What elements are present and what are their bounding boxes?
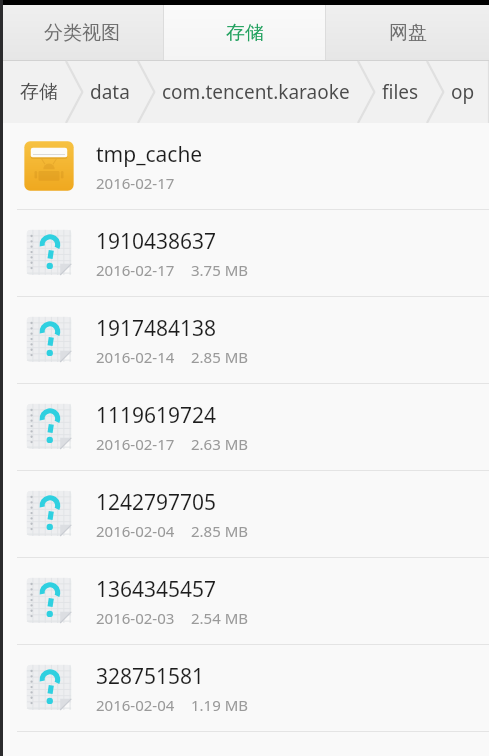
staticText: 网盘: [389, 21, 427, 45]
staticText: 1910438637: [96, 227, 217, 256]
button[interactable]: 1910438637: [0, 210, 489, 296]
staticText: 1.19 MB: [191, 695, 249, 715]
button[interactable]: 存储: [14, 61, 64, 123]
button[interactable]: opus: [445, 61, 489, 123]
staticText: 2016-02-04: [96, 695, 175, 715]
button[interactable]: tmp_cache: [0, 123, 489, 209]
button[interactable]: 1917484138: [0, 297, 489, 383]
button[interactable]: 1242797705: [0, 471, 489, 557]
staticText: 1119619724: [96, 401, 217, 430]
staticText: files: [382, 79, 419, 105]
staticText: 1242797705: [96, 488, 217, 517]
button[interactable]: 存储: [163, 5, 326, 61]
staticText: 328751581: [96, 662, 205, 691]
button[interactable]: 分类视图: [0, 5, 163, 61]
staticText: 2.54 MB: [191, 608, 249, 628]
staticText: 存储: [226, 21, 264, 45]
staticText: opus: [451, 79, 483, 105]
button[interactable]: 328751581: [0, 645, 489, 731]
staticText: com.tencent.karaoke: [162, 79, 350, 105]
staticText: tmp_cache: [96, 140, 203, 169]
staticText: 2016-02-17: [96, 173, 175, 193]
staticText: 3.75 MB: [191, 260, 249, 280]
staticText: 1364345457: [96, 575, 217, 604]
button[interactable]: com.tencent.karaoke: [156, 61, 356, 123]
staticText: 2016-02-17: [96, 434, 175, 454]
button[interactable]: 网盘: [326, 5, 489, 61]
button[interactable]: data: [84, 61, 136, 123]
staticText: 2.85 MB: [191, 521, 249, 541]
button[interactable]: files: [376, 61, 425, 123]
staticText: 存储: [20, 80, 58, 104]
staticText: 1917484138: [96, 314, 217, 343]
staticText: data: [90, 79, 130, 105]
button[interactable]: 1364345457: [0, 558, 489, 644]
button[interactable]: 1119619724: [0, 384, 489, 470]
staticText: 2016-02-17: [96, 260, 175, 280]
staticText: 2016-02-04: [96, 521, 175, 541]
staticText: 2.85 MB: [191, 347, 249, 367]
staticText: 分类视图: [44, 21, 120, 45]
staticText: 2.63 MB: [191, 434, 249, 454]
staticText: 2016-02-14: [96, 347, 175, 367]
staticText: 2016-02-03: [96, 608, 175, 628]
